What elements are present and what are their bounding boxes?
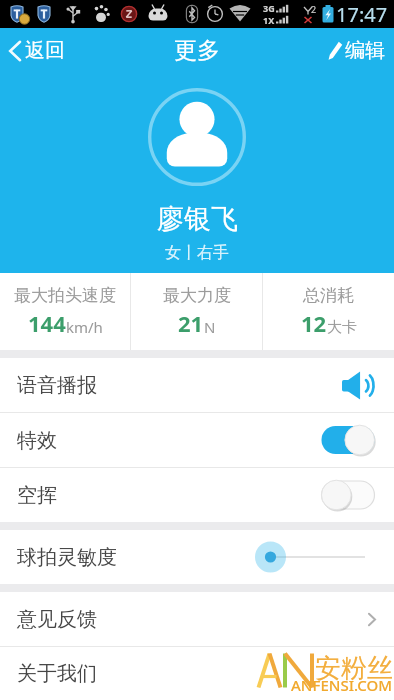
staticText: km/h (66, 317, 103, 337)
staticText: N (204, 317, 216, 337)
staticText: 意见反馈 (17, 607, 97, 632)
staticText: 编辑 (345, 38, 385, 63)
staticText: 女丨右手 (165, 243, 229, 263)
staticText: 返回 (25, 38, 65, 63)
staticText: 21 (178, 308, 204, 338)
staticText: 最大拍头速度 (14, 285, 116, 306)
staticText: 最大力度 (163, 285, 231, 306)
staticText: 更多 (174, 36, 220, 65)
button[interactable]: 总消耗 (263, 273, 394, 350)
staticText: 球拍灵敏度 (17, 545, 117, 570)
button[interactable]: 开关 已关闭 (320, 478, 376, 512)
staticText: 总消耗 (303, 285, 354, 306)
button[interactable]: 关于我们 (0, 647, 394, 700)
staticText: 语音播报 (17, 373, 97, 398)
button[interactable]: 开关 已开启 (320, 423, 376, 457)
button[interactable]: 最大力度 (131, 273, 262, 350)
staticText: 安粉丝 (315, 652, 393, 685)
button[interactable]: 球拍灵敏度 (0, 530, 394, 584)
button[interactable]: 意见反馈 (0, 592, 394, 646)
button[interactable]: 语音播报 (0, 358, 394, 412)
staticText: ANFENSI.COM (291, 675, 393, 695)
staticText: 空挥 (17, 483, 57, 508)
staticText: 大卡 (327, 318, 357, 337)
staticText: 关于我们 (17, 661, 97, 686)
staticText: 2 (311, 3, 317, 15)
button[interactable]: 空挥 (0, 468, 394, 522)
staticText: 特效 (17, 428, 57, 453)
button[interactable]: 语音播报 (339, 368, 376, 402)
button[interactable]: 意见反馈 (352, 604, 376, 634)
staticText: 3G (263, 2, 275, 14)
staticText: 17:47 (336, 1, 388, 28)
button[interactable]: 返回 (0, 28, 77, 73)
staticText: 12 (301, 308, 327, 338)
staticText: 1X (263, 14, 275, 26)
button[interactable]: 最大拍头速度 (0, 273, 130, 350)
staticText: 144 (28, 308, 66, 338)
staticText: 廖银飞 (157, 202, 238, 236)
button[interactable]: 特效 (0, 413, 394, 467)
button[interactable]: 球拍灵敏度 (255, 540, 376, 574)
button[interactable]: 编辑 (316, 28, 394, 73)
